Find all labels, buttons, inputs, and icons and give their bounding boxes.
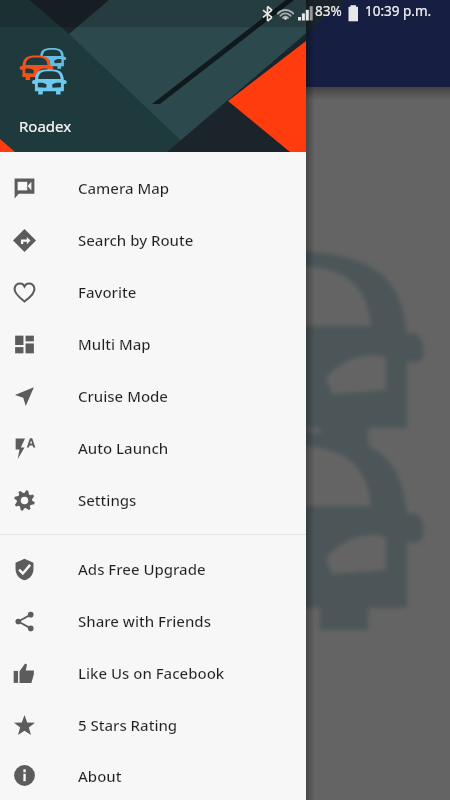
staticText: Cruise Mode	[78, 386, 168, 406]
button[interactable]: Cruise Mode	[0, 370, 306, 422]
staticText: Favorite	[78, 282, 137, 302]
staticText: Auto Launch	[78, 438, 169, 458]
button[interactable]: About	[0, 751, 306, 800]
staticText: Ads Free Upgrade	[78, 559, 206, 579]
button[interactable]: Like Us on Facebook	[0, 647, 306, 699]
button[interactable]: Camera Map	[0, 162, 306, 214]
staticText: 10:39 p.m.	[365, 2, 432, 20]
button[interactable]: Ads Free Upgrade	[0, 543, 306, 595]
staticText: Roadex	[19, 116, 72, 136]
staticText: Multi Map	[78, 334, 151, 354]
button[interactable]: Auto Launch	[0, 422, 306, 474]
button[interactable]: Settings	[0, 474, 306, 526]
staticText: Settings	[78, 490, 137, 510]
staticText: 5 Stars Rating	[78, 715, 178, 735]
button[interactable]: 5 Stars Rating	[0, 699, 306, 751]
button[interactable]: Share with Friends	[0, 595, 306, 647]
staticText: About	[78, 766, 122, 786]
staticText: Camera Map	[78, 178, 170, 198]
button[interactable]: Search by Route	[0, 214, 306, 266]
staticText: Like Us on Facebook	[78, 663, 225, 683]
staticText: Search by Route	[78, 230, 194, 250]
button[interactable]: Favorite	[0, 266, 306, 318]
button[interactable]: Multi Map	[0, 318, 306, 370]
staticText: Share with Friends	[78, 611, 211, 631]
staticText: 83%	[315, 2, 342, 20]
